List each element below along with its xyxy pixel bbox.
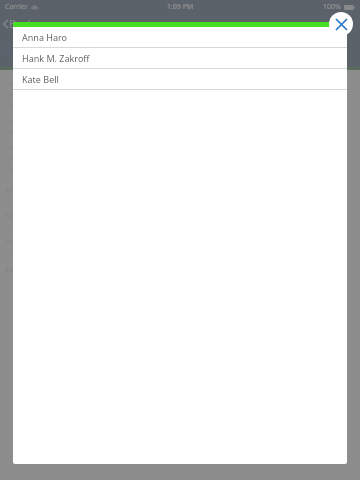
- staticText: Lorem ipsum dolor sit amet, consectetur: [5, 90, 120, 98]
- staticText: Sample: [5, 237, 28, 246]
- button[interactable]: Back: [2, 16, 34, 31]
- staticText: Lorem ipsum dolor sit amet, consectetur: [5, 127, 120, 135]
- staticText: Lorem ipsum dolor sit amet, consectetur: [5, 144, 120, 152]
- button[interactable]: Hank M. Zakroff: [13, 48, 347, 69]
- staticText: detail line: [5, 221, 31, 228]
- button[interactable]: Close: [329, 12, 353, 36]
- staticText: E: [5, 36, 17, 63]
- staticText: detail line: [5, 247, 31, 254]
- staticText: Back: [9, 16, 34, 31]
- staticText: Sample: [5, 185, 28, 194]
- staticText: Sample: [5, 211, 28, 220]
- staticText: Kate Bell: [22, 73, 59, 85]
- staticText: Lorem ipsum dolor sit amet, consectetur: [5, 80, 120, 88]
- button[interactable]: Anna Haro: [13, 27, 347, 48]
- staticText: Lorem ipsum dolor sit amet, consectetur: [5, 100, 120, 108]
- staticText: 100%: [323, 2, 341, 12]
- staticText: Hank M. Zakroff: [22, 52, 90, 64]
- staticText: Carrier: [5, 2, 28, 12]
- staticText: detail line: [5, 195, 31, 202]
- staticText: Lorem ipsum dolor sit amet, consectetur: [5, 154, 120, 162]
- staticText: 1:09 PM: [167, 2, 194, 12]
- staticText: Ea: [5, 265, 13, 275]
- staticText: Anna Haro: [22, 31, 67, 43]
- staticText: Lorem ipsum dolor sit amet, consectetur: [5, 117, 120, 125]
- staticText: Lorem ipsum dolor sit amet, consectetur: [5, 164, 120, 172]
- button[interactable]: Kate Bell: [13, 69, 347, 90]
